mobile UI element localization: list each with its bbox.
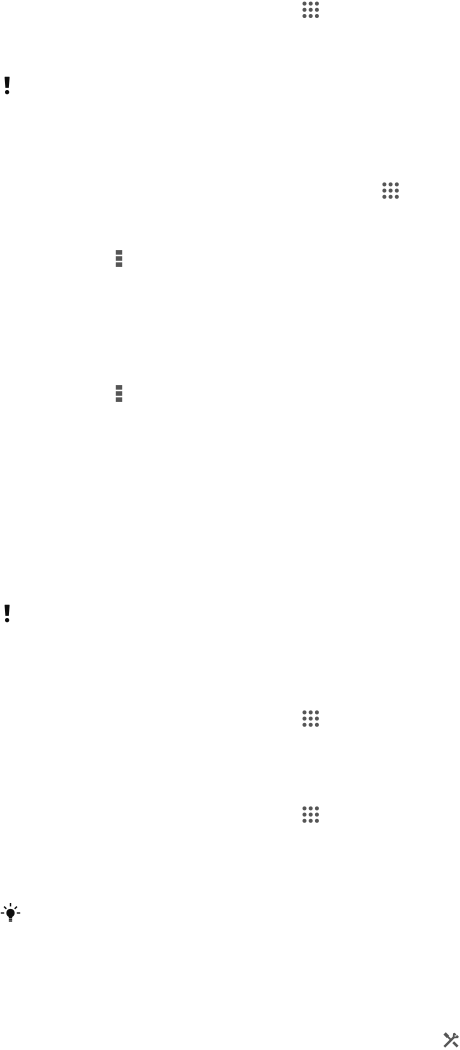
button[interactable]: Troubleshooting [442,1031,460,1049]
